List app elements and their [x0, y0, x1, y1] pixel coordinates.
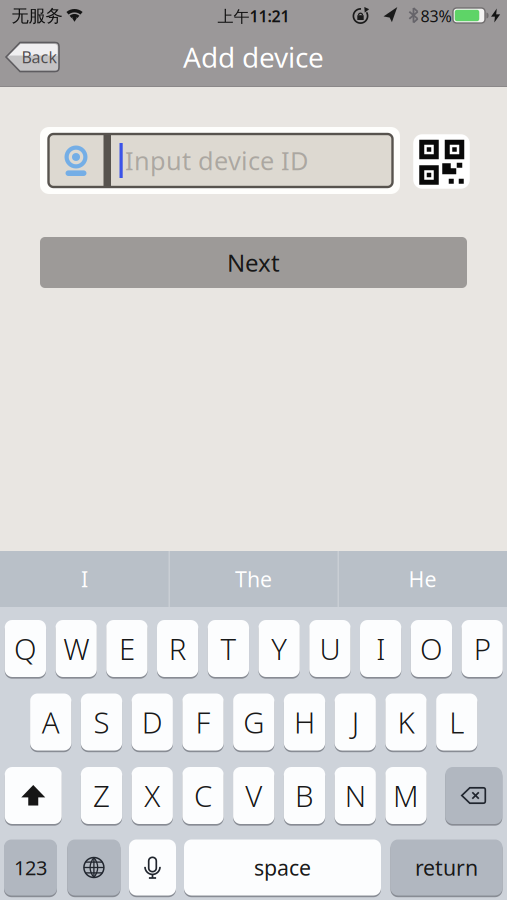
staticText: Y	[271, 629, 287, 668]
button[interactable]: U	[309, 619, 350, 678]
staticText: X	[144, 776, 160, 815]
staticText: 123	[14, 854, 47, 881]
button[interactable]: Input device ID	[48, 134, 392, 187]
button[interactable]: P	[461, 619, 503, 678]
staticText: Next	[227, 247, 280, 278]
staticText: O	[420, 629, 443, 668]
staticText: B	[295, 776, 314, 815]
button[interactable]: return	[390, 838, 502, 896]
button[interactable]: O	[411, 619, 452, 678]
button[interactable]: space	[184, 838, 381, 896]
staticText: return	[415, 853, 478, 882]
button[interactable]: Dictate	[129, 838, 176, 896]
button[interactable]: X	[132, 766, 173, 825]
staticText: A	[42, 702, 60, 741]
button[interactable]: B	[284, 766, 325, 825]
button[interactable]: G	[233, 692, 274, 751]
button[interactable]: Scan QR code	[413, 134, 470, 189]
staticText: Back	[21, 46, 57, 68]
staticText: D	[142, 702, 163, 741]
button[interactable]: Y	[258, 619, 300, 678]
staticText: M	[393, 776, 419, 815]
button[interactable]: Next keyboard	[67, 838, 120, 896]
button[interactable]: Back	[5, 42, 60, 72]
button[interactable]: F	[182, 692, 224, 751]
button[interactable]: Delete	[445, 766, 502, 825]
staticText: 83%	[420, 5, 451, 27]
button[interactable]: I	[0, 551, 168, 607]
staticText: P	[474, 629, 491, 668]
button[interactable]: Next	[40, 237, 467, 288]
staticText: space	[254, 853, 311, 882]
staticText: G	[243, 702, 264, 741]
staticText: H	[294, 702, 315, 741]
staticText: E	[119, 629, 135, 668]
staticText: 无服务	[11, 5, 62, 27]
button[interactable]: S	[81, 692, 122, 751]
button[interactable]: K	[385, 692, 427, 751]
button[interactable]: C	[182, 766, 224, 825]
staticText: K	[397, 702, 414, 741]
button[interactable]: Shift	[5, 766, 62, 825]
staticText: T	[220, 629, 236, 668]
staticText: I	[81, 565, 88, 593]
button[interactable]: 123	[4, 838, 57, 896]
button[interactable]: R	[157, 619, 198, 678]
staticText: 上午11:21	[217, 5, 289, 27]
staticText: The	[235, 565, 272, 593]
staticText: Q	[14, 629, 37, 668]
staticText: S	[93, 702, 109, 741]
staticText: L	[449, 702, 464, 741]
staticText: C	[194, 776, 212, 815]
button[interactable]: M	[385, 766, 427, 825]
button[interactable]: V	[233, 766, 274, 825]
staticText: U	[319, 629, 340, 668]
staticText: Input device ID	[125, 144, 308, 177]
button[interactable]: Q	[5, 619, 46, 678]
staticText: N	[345, 776, 366, 815]
staticText: F	[195, 702, 210, 741]
button[interactable]: T	[208, 619, 249, 678]
button[interactable]: J	[335, 692, 376, 751]
button[interactable]: W	[55, 619, 97, 678]
staticText: Z	[93, 776, 110, 815]
staticText: I	[376, 629, 385, 668]
button[interactable]: A	[30, 692, 71, 751]
staticText: Add device	[183, 38, 324, 76]
staticText: W	[63, 629, 89, 668]
staticText: R	[169, 629, 187, 668]
button[interactable]: He	[338, 551, 506, 607]
button[interactable]: E	[106, 619, 147, 678]
button[interactable]: The	[169, 551, 337, 607]
staticText: V	[245, 776, 262, 815]
button[interactable]: H	[284, 692, 325, 751]
button[interactable]: L	[436, 692, 477, 751]
staticText: J	[352, 702, 359, 741]
staticText: He	[408, 565, 436, 593]
button[interactable]: D	[132, 692, 173, 751]
button[interactable]: Z	[81, 766, 122, 825]
button[interactable]: N	[335, 766, 376, 825]
button[interactable]: I	[360, 619, 401, 678]
